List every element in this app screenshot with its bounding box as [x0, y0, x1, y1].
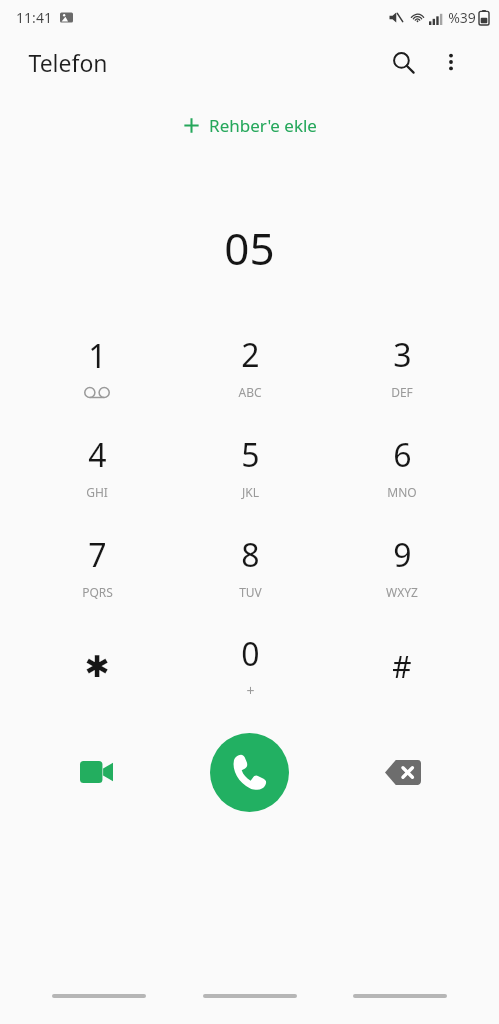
staticText: +: [246, 681, 255, 700]
staticText: JKL: [242, 484, 259, 500]
staticText: %39: [448, 8, 476, 27]
staticText: Telefon: [28, 47, 108, 78]
staticText: 5: [241, 433, 260, 477]
staticText: 05: [224, 218, 275, 278]
button[interactable]: Video call: [68, 744, 124, 800]
staticText: 6: [393, 433, 412, 477]
staticText: DEF: [391, 384, 413, 400]
button[interactable]: 4: [41, 418, 153, 514]
button[interactable]: 9: [346, 518, 458, 614]
staticText: 0: [241, 632, 260, 676]
staticText: Rehber'e ekle: [209, 114, 317, 137]
button[interactable]: 2: [194, 318, 306, 414]
staticText: 1: [88, 334, 107, 378]
button[interactable]: 5: [194, 418, 306, 514]
staticText: 2: [241, 333, 260, 377]
button[interactable]: Backspace: [375, 744, 431, 800]
staticText: 4: [88, 433, 107, 477]
button[interactable]: #: [346, 618, 458, 714]
button[interactable]: 3: [346, 318, 458, 414]
button[interactable]: 0: [194, 618, 306, 714]
button[interactable]: 1: [41, 318, 153, 414]
button[interactable]: ✱: [41, 618, 153, 714]
button[interactable]: More options: [429, 40, 473, 84]
button[interactable]: Search: [381, 40, 425, 84]
staticText: #: [392, 646, 412, 687]
button[interactable]: 8: [194, 518, 306, 614]
button[interactable]: Recents: [47, 983, 151, 1009]
staticText: 3: [393, 333, 412, 377]
button[interactable]: Call: [210, 733, 289, 812]
staticText: ✱: [84, 649, 110, 684]
staticText: 11:41: [16, 8, 52, 27]
button[interactable]: 7: [41, 518, 153, 614]
staticText: 8: [241, 533, 260, 577]
button[interactable]: Home: [198, 983, 302, 1009]
staticText: PQRS: [82, 584, 113, 600]
staticText: GHI: [86, 484, 108, 500]
button[interactable]: Rehber'e ekle: [169, 108, 331, 143]
staticText: MNO: [387, 484, 417, 500]
staticText: TUV: [239, 584, 262, 600]
button[interactable]: 6: [346, 418, 458, 514]
staticText: ABC: [238, 384, 262, 400]
staticText: WXYZ: [386, 584, 418, 600]
button[interactable]: Back: [348, 983, 452, 1009]
staticText: 7: [88, 533, 107, 577]
staticText: 9: [393, 533, 412, 577]
